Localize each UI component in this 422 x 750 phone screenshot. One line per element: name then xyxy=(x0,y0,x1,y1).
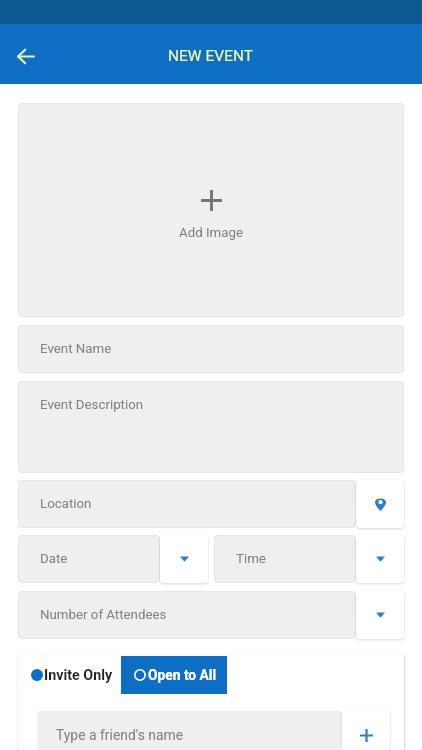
button[interactable]: Open Date picker xyxy=(160,535,208,583)
button[interactable]: Event Description xyxy=(18,381,404,473)
button[interactable]: Add friend xyxy=(342,711,390,750)
staticText: Add Image xyxy=(179,225,243,241)
button[interactable]: Type a friend's name xyxy=(37,711,342,750)
button[interactable]: Invite Only xyxy=(31,656,113,694)
staticText: Number of Attendees xyxy=(40,607,167,623)
staticText: Event Name xyxy=(40,341,112,357)
button[interactable]: Location xyxy=(18,480,356,528)
button[interactable]: Back xyxy=(4,34,48,78)
button[interactable]: Time xyxy=(214,535,356,583)
staticText: Event Description xyxy=(40,397,144,413)
staticText: Date xyxy=(40,551,68,567)
button[interactable]: Open to All xyxy=(121,656,227,694)
staticText: Invite Only xyxy=(44,667,113,684)
button[interactable]: Event Name xyxy=(18,325,404,373)
button[interactable]: Add Image xyxy=(18,103,404,317)
staticText: Type a friend's name xyxy=(56,727,184,743)
staticText: Location xyxy=(40,496,92,512)
staticText: NEW EVENT xyxy=(168,47,254,65)
staticText: Time xyxy=(236,551,266,567)
button[interactable]: Pick location xyxy=(356,480,404,528)
staticText: Open to All xyxy=(148,667,217,683)
button[interactable]: Date xyxy=(18,535,160,583)
button[interactable]: Number of Attendees xyxy=(18,591,356,639)
button[interactable]: Open Time picker xyxy=(356,535,404,583)
button[interactable]: Open Number of Attendees picker xyxy=(356,591,404,639)
